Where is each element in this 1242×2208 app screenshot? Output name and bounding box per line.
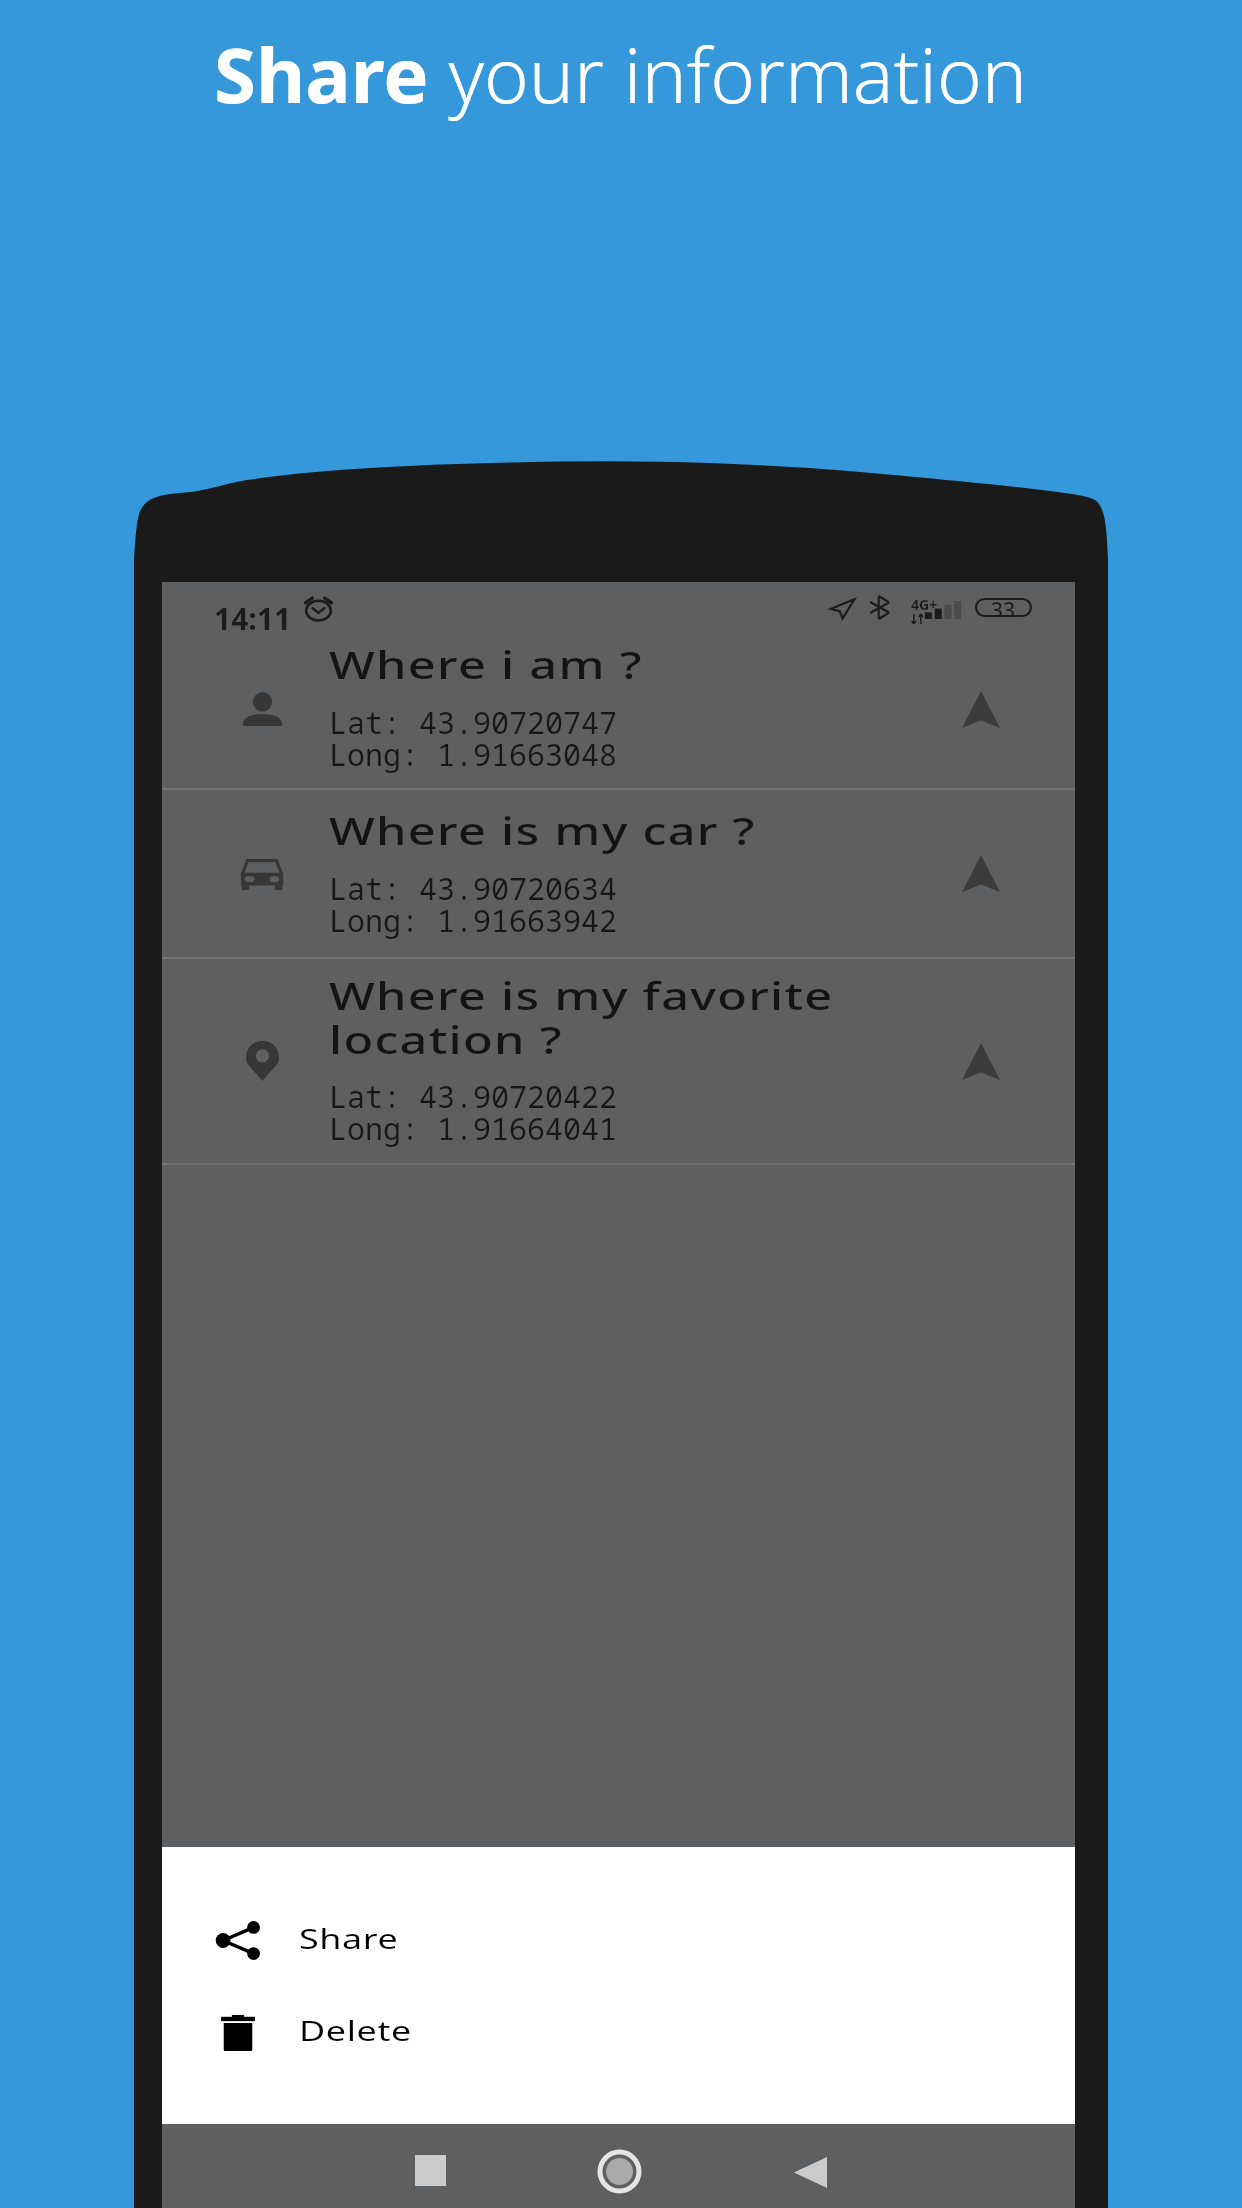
staticText: Share your information: [214, 22, 1028, 126]
staticText: 33: [991, 596, 1016, 617]
staticText: 14:11: [214, 598, 292, 639]
staticText: Lat: 43.90720747 Long: 1.91663048: [329, 702, 617, 775]
staticText: Where i am ?: [329, 638, 644, 690]
staticText: Delete: [299, 2011, 413, 2049]
staticText: 4G+: [911, 595, 938, 614]
staticText: Where is my car ?: [329, 804, 756, 856]
button[interactable]: Where i am ?: [162, 630, 1075, 788]
button[interactable]: Home: [582, 2134, 656, 2208]
button[interactable]: Delete: [162, 1976, 1075, 2088]
staticText: Lat: 43.90720634 Long: 1.91663942: [329, 868, 617, 941]
staticText: Where is my favorite location ?: [329, 969, 835, 1065]
staticText: Lat: 43.90720422 Long: 1.91664041: [329, 1076, 617, 1149]
button[interactable]: Back: [773, 2135, 847, 2208]
staticText: Share: [299, 1919, 399, 1957]
button[interactable]: Where is my car ?: [162, 790, 1075, 957]
button[interactable]: Where is my favorite location ?: [162, 959, 1075, 1163]
button[interactable]: Share: [162, 1884, 1075, 1996]
button[interactable]: Recent apps: [393, 2133, 467, 2207]
